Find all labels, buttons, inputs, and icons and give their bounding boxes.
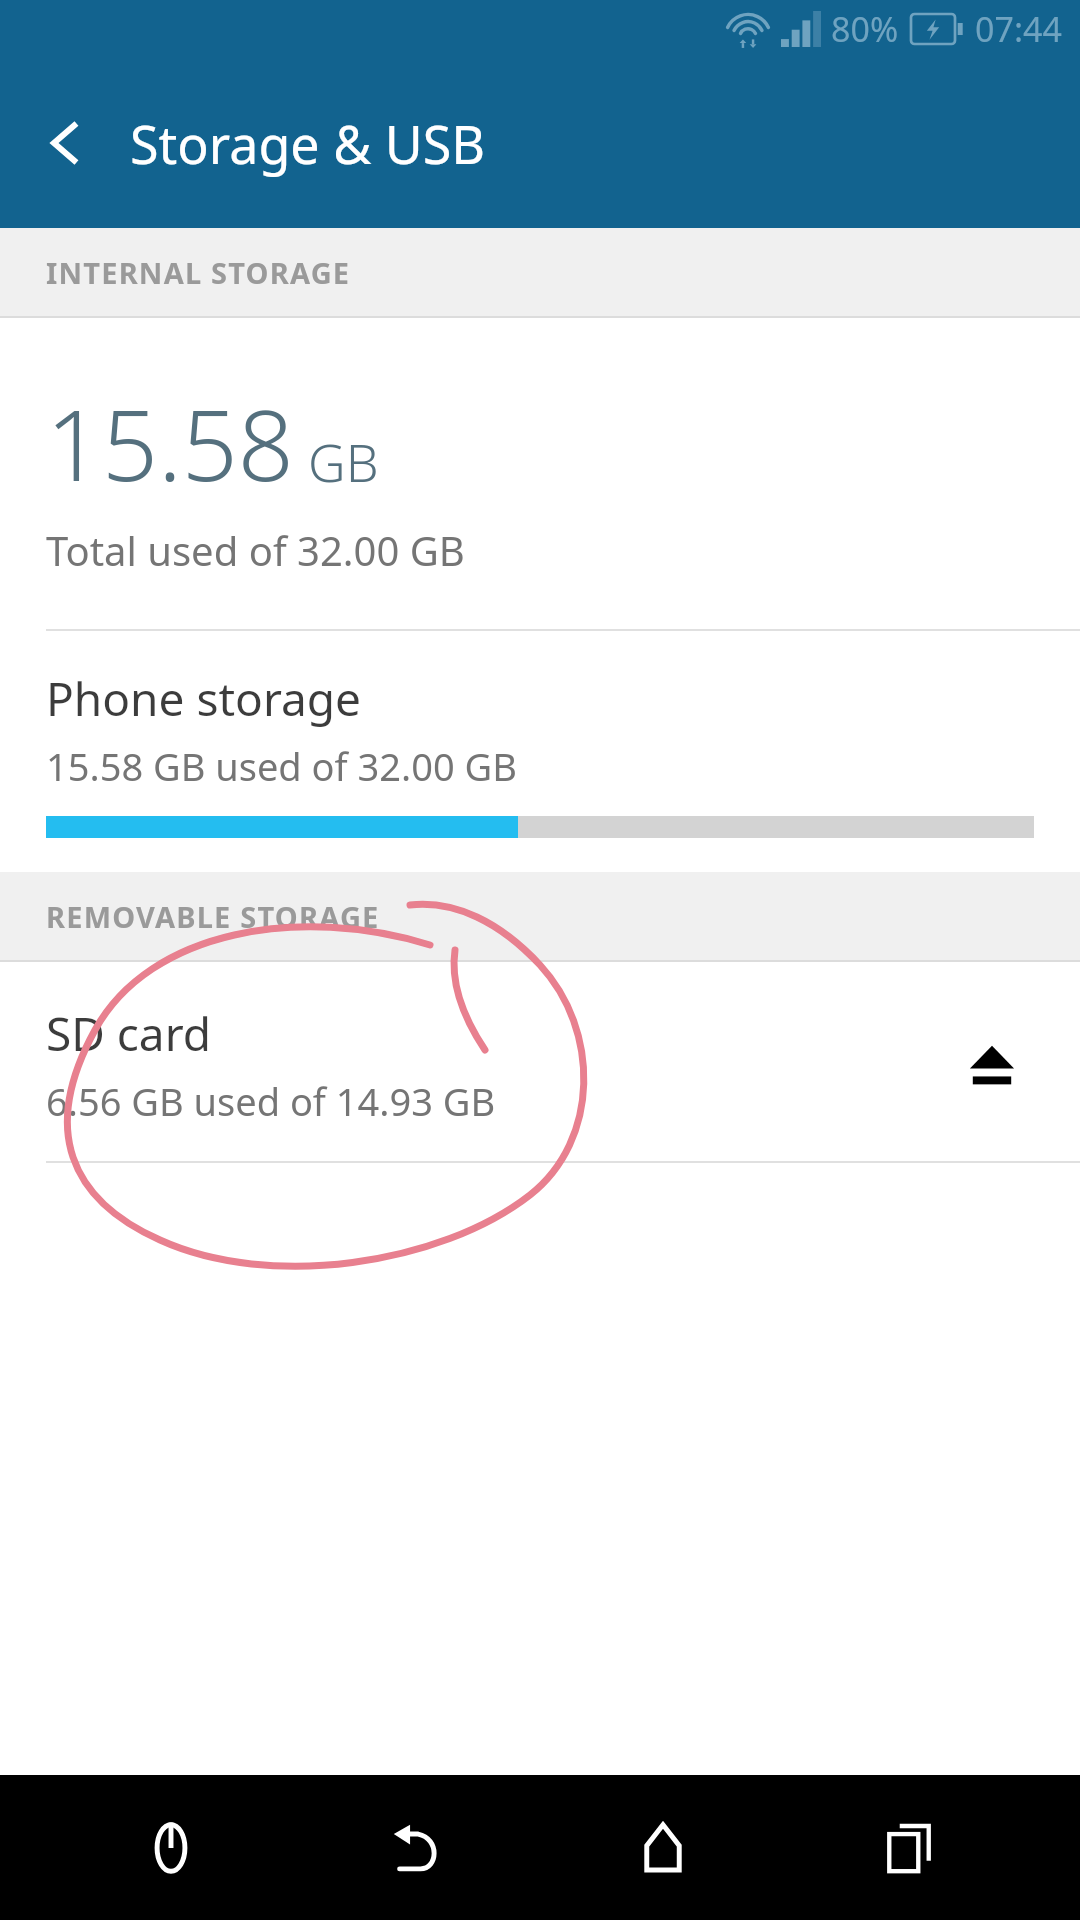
staticText: REMOVABLE STORAGE xyxy=(46,897,380,936)
staticText: 15.58 GB used of 32.00 GB xyxy=(46,740,517,792)
staticText: Storage & USB xyxy=(130,108,486,179)
button[interactable]: Power xyxy=(96,1775,246,1920)
staticText: 80% xyxy=(831,6,899,52)
staticText: Total used of 32.00 GB xyxy=(46,523,465,577)
staticText: SD card xyxy=(46,1002,212,1065)
staticText: 07:44 xyxy=(975,6,1062,52)
button[interactable]: Recent apps xyxy=(834,1775,984,1920)
staticText: GB xyxy=(308,426,379,497)
staticText: INTERNAL STORAGE xyxy=(46,253,351,292)
button[interactable]: Eject SD card xyxy=(950,1023,1034,1107)
button[interactable]: Back xyxy=(342,1775,492,1920)
staticText: 15.58 xyxy=(46,376,294,509)
staticText: Phone storage xyxy=(46,667,362,730)
button[interactable]: SD card xyxy=(0,962,1080,1161)
button[interactable]: Back xyxy=(20,98,110,188)
button[interactable]: Home xyxy=(588,1775,738,1920)
staticText: 6.56 GB used of 14.93 GB xyxy=(46,1075,496,1127)
button[interactable]: Phone storage xyxy=(0,631,1080,872)
